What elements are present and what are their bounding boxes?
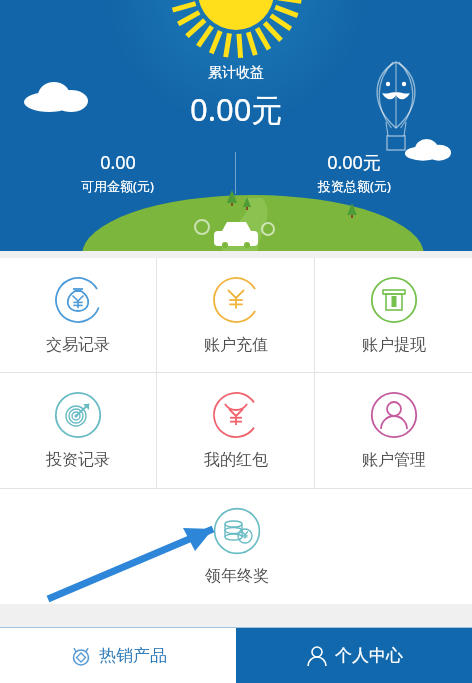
staticText: 累计收益 <box>208 64 264 82</box>
button[interactable]: 领年终奖 <box>158 489 315 604</box>
button[interactable]: 账户提现 <box>315 258 472 372</box>
staticText: 领年终奖 <box>205 566 269 586</box>
staticText: 投资总额(元) <box>318 177 391 195</box>
staticText: 账户提现 <box>362 335 426 355</box>
staticText: 0.00元 <box>327 150 381 175</box>
button[interactable]: 热销产品 <box>0 628 236 683</box>
staticText: 账户充值 <box>204 335 268 355</box>
staticText: 账户管理 <box>362 450 426 470</box>
staticText: 可用金额(元) <box>81 177 154 195</box>
button[interactable]: 账户充值 <box>157 258 314 372</box>
button[interactable]: 账户管理 <box>315 373 472 488</box>
staticText: 交易记录 <box>46 335 110 355</box>
staticText: 0.00 <box>100 150 136 175</box>
staticText: 投资记录 <box>46 450 110 470</box>
staticText: 我的红包 <box>204 450 268 470</box>
button[interactable]: 个人中心 <box>236 628 472 683</box>
staticText: 热销产品 <box>99 645 167 666</box>
button[interactable]: 交易记录 <box>0 258 156 372</box>
staticText: 0.00元 <box>190 88 283 130</box>
staticText: 个人中心 <box>335 645 403 666</box>
button[interactable]: 投资记录 <box>0 373 156 488</box>
button[interactable]: 我的红包 <box>157 373 314 488</box>
